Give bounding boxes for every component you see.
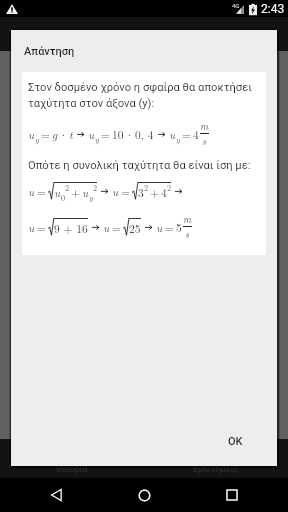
staticText: u [112,183,119,199]
button[interactable]: Θεωρία [0,464,144,475]
staticText: = [165,219,174,235]
staticText: ταχύτητα στον άξονα (y): [28,97,155,110]
staticText: u [88,126,95,142]
staticText: + [150,184,159,200]
staticText: g [52,126,58,142]
staticText: 10 [112,126,124,142]
staticText: 2 [93,182,97,193]
staticText: u [28,183,35,199]
staticText: · [125,126,134,142]
staticText: = [112,219,121,235]
staticText: + [71,184,80,200]
button[interactable]: OK [220,429,251,454]
staticText: y [35,134,39,145]
staticText: u [169,126,176,142]
staticText: Θεωρία [56,464,88,475]
staticText: t [69,126,73,142]
staticText: m [183,212,192,226]
staticText: 4G [232,2,240,9]
staticText: u [54,184,61,200]
staticText: 4 [161,184,167,200]
staticText: m [200,119,209,133]
button[interactable]: Ερωτήσεις [144,464,288,475]
staticText: = [37,183,46,199]
button[interactable]: Back [42,481,70,509]
staticText: 0 [61,192,65,203]
staticText: s [202,134,207,148]
button[interactable]: Home [130,481,158,509]
staticText: u [28,126,35,142]
staticText: = [121,183,130,199]
staticText: Απάντηση [24,45,75,58]
staticText: u [28,219,35,235]
staticText: Ερωτήσεις [193,464,239,475]
staticText: u [103,219,110,235]
staticText: 2 [167,182,171,193]
staticText: = [37,219,46,235]
button[interactable]: Recent apps [218,481,246,509]
staticText: 3 [138,184,144,200]
staticText: 25 [129,220,141,236]
staticText: u [82,184,89,200]
staticText: · [59,126,68,142]
staticText: 2 [65,182,69,193]
staticText: 9 + 16 [54,220,88,236]
staticText: y [89,192,93,203]
staticText: u [156,219,163,235]
staticText: 2:43 [261,2,285,16]
staticText: y [95,134,99,145]
staticText: Οπότε η συνολική ταχύτητα θα είναι ίση μ… [28,159,251,172]
staticText: OK [228,435,243,448]
staticText: 4 [193,126,199,142]
staticText: 5 [176,219,182,235]
staticText: y [176,134,180,145]
staticText: Στον δοσμένο χρόνο η σφαίρα θα αποκτήσει [28,81,252,94]
staticText: 2 [144,182,148,193]
staticText: s [185,227,190,241]
staticText: = [182,126,191,142]
staticText: = [41,126,50,142]
staticText: = [101,126,110,142]
staticText: 0, 4 [135,126,154,142]
